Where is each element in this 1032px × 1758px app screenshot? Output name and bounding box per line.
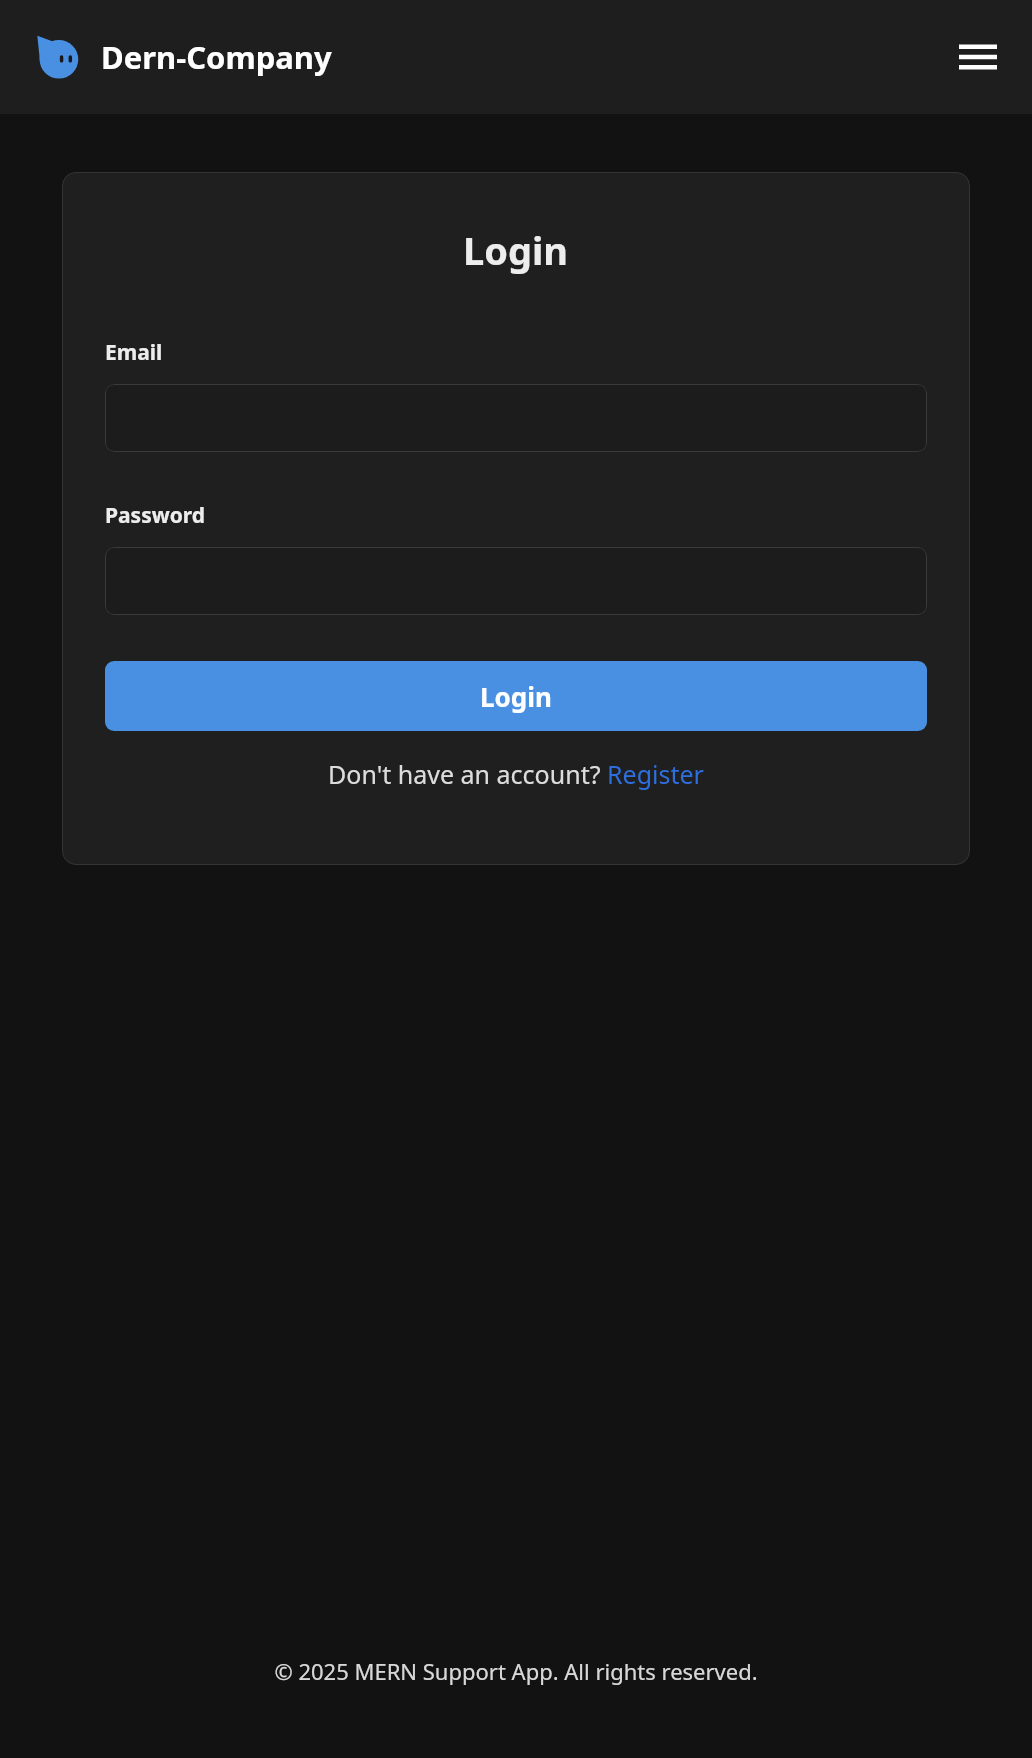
- button[interactable]: Text input field: [105, 547, 927, 615]
- button[interactable]: Dern-Company: [35, 34, 332, 80]
- button[interactable]: Open navigation menu: [952, 31, 1004, 83]
- button[interactable]: Don't have an account? Register: [105, 757, 927, 791]
- staticText: Password: [105, 501, 206, 530]
- staticText: © 2025 MERN Support App. All rights rese…: [274, 1656, 758, 1686]
- staticText: Don't have an account? Register: [328, 757, 704, 791]
- staticText: Login: [480, 679, 552, 714]
- staticText: Login: [463, 224, 569, 276]
- button[interactable]: Text input field: [105, 384, 927, 452]
- staticText: Dern-Company: [101, 36, 332, 78]
- staticText: Email: [105, 338, 163, 367]
- button[interactable]: Login: [105, 661, 927, 731]
